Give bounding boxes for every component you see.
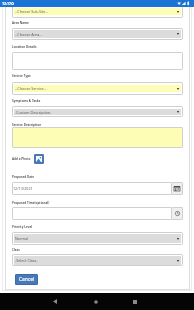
staticText: Service Type (12, 74, 31, 78)
button[interactable]: Add a Photo (34, 154, 44, 164)
button[interactable]: Proposed date (12, 182, 172, 195)
button[interactable]: Cancel (15, 274, 38, 285)
staticText: --Choose Sub-Site-- (15, 9, 48, 14)
button[interactable]: Proposed time (12, 207, 172, 220)
staticText: Proposed Time(optional) (12, 201, 50, 205)
staticText: Cancel (19, 276, 35, 283)
button[interactable]: Location Details (12, 52, 183, 70)
button[interactable]: Choose Sub-Site (12, 5, 183, 18)
button[interactable]: Home (94, 300, 98, 304)
staticText: Symptoms & Tasks (12, 99, 41, 103)
button[interactable]: Choose Service (12, 82, 183, 95)
button[interactable]: Choose Area (12, 28, 183, 40)
button[interactable]: Class (12, 254, 183, 266)
button[interactable]: Priority level (12, 232, 183, 245)
staticText: Area Name (12, 21, 29, 25)
staticText: Class (12, 248, 20, 252)
button[interactable]: Custom Description (12, 106, 183, 117)
staticText: 12:17 (2, 1, 11, 6)
staticText: Normal (15, 236, 29, 241)
button[interactable]: Service Description (12, 127, 183, 148)
staticText: Service Description (12, 123, 42, 127)
button[interactable]: Back (53, 299, 57, 304)
staticText: -Select Class- (15, 258, 38, 263)
staticText: Priority Level (12, 225, 33, 229)
staticText: --Choose Service-- (15, 86, 46, 91)
button[interactable]: Pick date (171, 182, 183, 195)
staticText: Location Details (12, 45, 37, 49)
staticText: --Choose Area-- (15, 32, 42, 37)
staticText: -Custom Description- (15, 110, 52, 115)
staticText: Proposed Date (12, 175, 35, 179)
button[interactable]: Pick time (171, 207, 183, 220)
staticText: Add a Photo (12, 157, 31, 161)
staticText: 12/13/2021 (13, 186, 33, 191)
